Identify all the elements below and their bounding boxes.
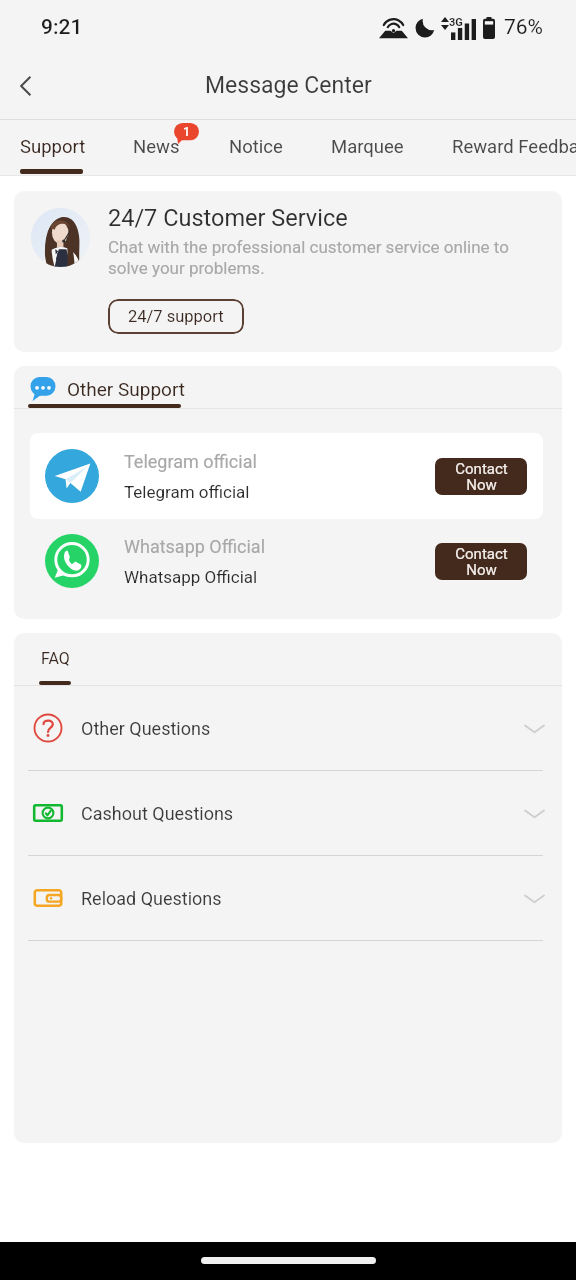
button[interactable]: Telegram official	[30, 433, 543, 519]
staticText: 3G	[449, 16, 463, 29]
button[interactable]: 24/7 support	[108, 299, 244, 334]
staticText: Contact Now	[455, 460, 508, 494]
button[interactable]: Contact Now	[435, 458, 527, 495]
staticText: Other Questions	[81, 718, 524, 739]
staticText: Whatsapp Official	[124, 536, 266, 557]
button[interactable]: Reload Questions	[14, 856, 562, 941]
button[interactable]: Other Questions	[14, 686, 562, 771]
staticText: Notice	[229, 136, 283, 158]
staticText: Reload Questions	[81, 888, 524, 909]
staticText: 24/7 Customer Service	[108, 204, 348, 232]
staticText: Other Support	[67, 378, 186, 400]
staticText: Chat with the professional customer serv…	[108, 237, 512, 279]
staticText: Telegram official	[124, 451, 257, 472]
button[interactable]: Reward Feedback	[452, 120, 576, 176]
button[interactable]: Support	[20, 120, 83, 176]
button[interactable]: Cashout Questions	[14, 771, 562, 856]
staticText: Cashout Questions	[81, 803, 524, 824]
staticText: Whatsapp Official	[124, 567, 258, 587]
staticText: 76%	[504, 15, 543, 40]
button[interactable]: Back	[2, 62, 50, 110]
button[interactable]: Notice	[229, 120, 281, 176]
staticText: Message Center	[205, 72, 372, 99]
staticText: Telegram official	[124, 482, 250, 502]
staticText: Reward Feedback	[452, 136, 576, 158]
staticText: 9:21	[41, 15, 83, 40]
staticText: 1	[183, 124, 191, 139]
button[interactable]: News	[133, 120, 178, 176]
button[interactable]: Whatsapp Official	[30, 518, 543, 604]
staticText: Contact Now	[455, 545, 508, 579]
button[interactable]: Marquee	[331, 120, 401, 176]
staticText: Support	[20, 136, 86, 158]
button[interactable]: Contact Now	[435, 543, 527, 580]
staticText: Marquee	[331, 136, 404, 158]
staticText: 24/7 support	[128, 307, 224, 326]
staticText: FAQ	[41, 649, 70, 668]
staticText: News	[133, 136, 180, 158]
